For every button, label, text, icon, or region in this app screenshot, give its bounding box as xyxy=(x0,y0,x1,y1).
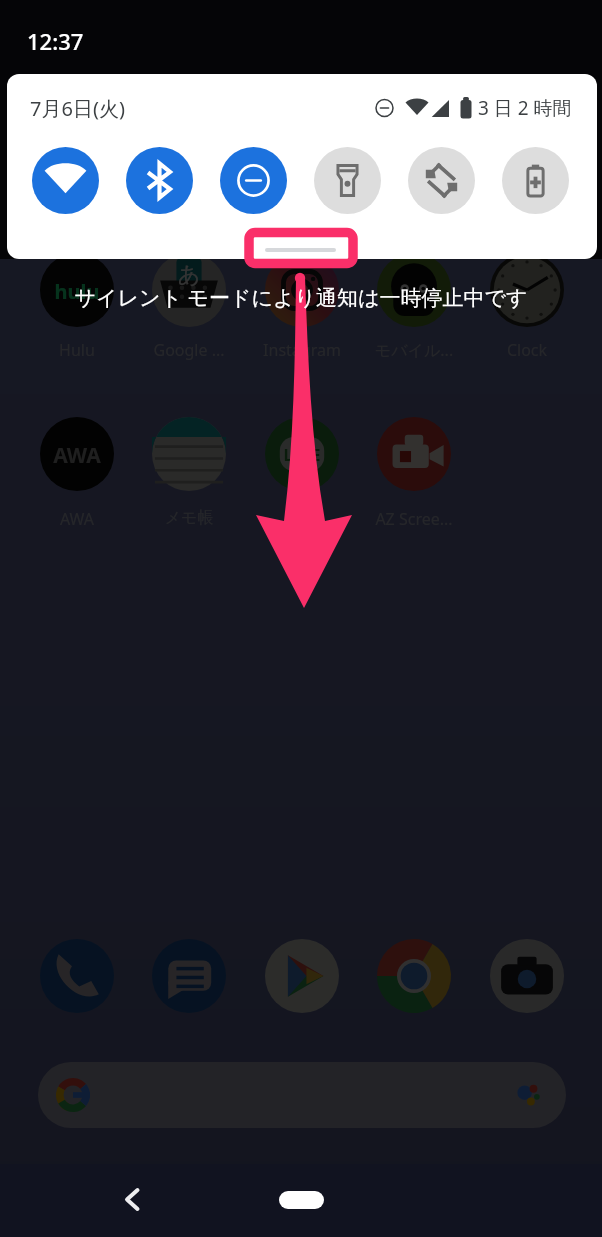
staticText: サイレント モードにより通知は一時停止中です xyxy=(0,283,602,312)
button[interactable]: Messages xyxy=(149,939,229,1019)
button[interactable]: Bluetooth xyxy=(126,147,193,214)
staticText: 3 日 2 時間 xyxy=(478,95,572,121)
button[interactable]: Auto-rotate xyxy=(408,147,475,214)
staticText: AZ Scree... xyxy=(358,508,470,530)
button[interactable]: Do not disturb xyxy=(220,147,287,214)
button[interactable]: Back xyxy=(108,1174,158,1224)
button[interactable]: Phone xyxy=(37,939,117,1019)
staticText: AWA xyxy=(21,508,133,530)
button[interactable]: Google 日本語入力 xyxy=(133,253,245,365)
button[interactable]: Clock xyxy=(471,253,583,365)
button[interactable]: Camera xyxy=(487,939,567,1019)
button[interactable]: Flashlight xyxy=(314,147,381,214)
button[interactable]: Home xyxy=(274,1174,328,1224)
button[interactable]: AWA xyxy=(21,417,133,529)
button[interactable]: AZ Screen Recorder xyxy=(358,417,470,529)
button[interactable]: Wi-Fi xyxy=(32,147,99,214)
staticText: Google ... xyxy=(133,339,245,361)
button[interactable]: Battery saver xyxy=(502,147,569,214)
staticText: 7月6日(火) xyxy=(30,95,125,122)
button[interactable]: Instagram xyxy=(246,253,358,365)
button[interactable]: Expand quick settings xyxy=(265,248,336,252)
button[interactable]: メモ帳 xyxy=(133,417,245,529)
button[interactable]: Hulu xyxy=(21,253,133,365)
button[interactable]: モバイル Suica xyxy=(358,253,470,365)
staticText: Clock xyxy=(471,339,583,361)
staticText: hulu xyxy=(21,278,133,305)
staticText: メモ帳 xyxy=(133,508,245,528)
staticText: モバイル... xyxy=(358,339,470,361)
staticText: Instagram xyxy=(246,339,358,361)
button[interactable]: 7月6日(火) xyxy=(7,74,597,259)
staticText: あ xyxy=(133,261,245,289)
button[interactable]: Play Store xyxy=(262,939,342,1019)
button[interactable]: LINE xyxy=(246,417,358,529)
button[interactable]: Search xyxy=(38,1062,566,1128)
staticText: AWA xyxy=(21,441,133,470)
staticText: 12:37 xyxy=(27,26,84,56)
staticText: LINE xyxy=(246,508,358,530)
button[interactable]: Chrome xyxy=(374,939,454,1019)
staticText: LINE xyxy=(246,444,358,466)
